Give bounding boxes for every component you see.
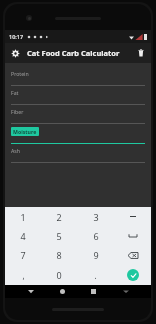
staticText: 4: [20, 230, 26, 242]
button[interactable]: Home: [56, 285, 69, 298]
staticText: 5: [56, 230, 62, 242]
button[interactable]: 7: [5, 245, 41, 265]
staticText: Ash: [11, 147, 21, 154]
staticText: 0: [56, 269, 62, 281]
staticText: 8: [56, 249, 62, 261]
button[interactable]: 8: [41, 245, 77, 265]
button[interactable]: 5: [41, 226, 77, 245]
button[interactable]: Recents: [87, 285, 100, 298]
button[interactable]: 2: [41, 207, 77, 226]
button[interactable]: Minus: [114, 207, 151, 226]
staticText: Protein: [11, 70, 29, 77]
button[interactable]: Space: [114, 226, 151, 245]
staticText: .: [94, 270, 97, 281]
button[interactable]: Hide keyboard: [119, 285, 132, 298]
button[interactable]: Clear: [134, 46, 148, 60]
button[interactable]: 6: [77, 226, 114, 245]
staticText: Moisture: [13, 128, 37, 135]
staticText: Cat Food Carb Calculator: [27, 48, 120, 58]
staticText: 9: [93, 249, 99, 261]
button[interactable]: 0: [41, 265, 77, 285]
button[interactable]: 3: [77, 207, 114, 226]
button[interactable]: 9: [77, 245, 114, 265]
staticText: 6: [93, 230, 99, 242]
staticText: 2: [56, 211, 62, 223]
button[interactable]: Fat: [11, 86, 145, 105]
staticText: 3: [93, 211, 99, 223]
staticText: ,: [22, 270, 25, 281]
staticText: Fiber: [11, 108, 24, 115]
button[interactable]: Fiber: [11, 105, 145, 124]
button[interactable]: .: [77, 265, 114, 285]
staticText: Fat: [11, 89, 19, 96]
button[interactable]: Done: [114, 265, 151, 285]
staticText: 7: [20, 249, 26, 261]
button[interactable]: Backspace: [114, 245, 151, 265]
button[interactable]: 4: [5, 226, 41, 245]
button[interactable]: Ash: [11, 144, 145, 163]
button[interactable]: ,: [5, 265, 41, 285]
button[interactable]: Back: [24, 285, 37, 298]
staticText: 10:17: [9, 33, 24, 40]
button[interactable]: Protein: [11, 67, 145, 86]
button[interactable]: Moisture: [11, 124, 145, 144]
button[interactable]: 1: [5, 207, 41, 226]
button[interactable]: Settings: [8, 46, 22, 60]
staticText: 1: [20, 211, 26, 223]
